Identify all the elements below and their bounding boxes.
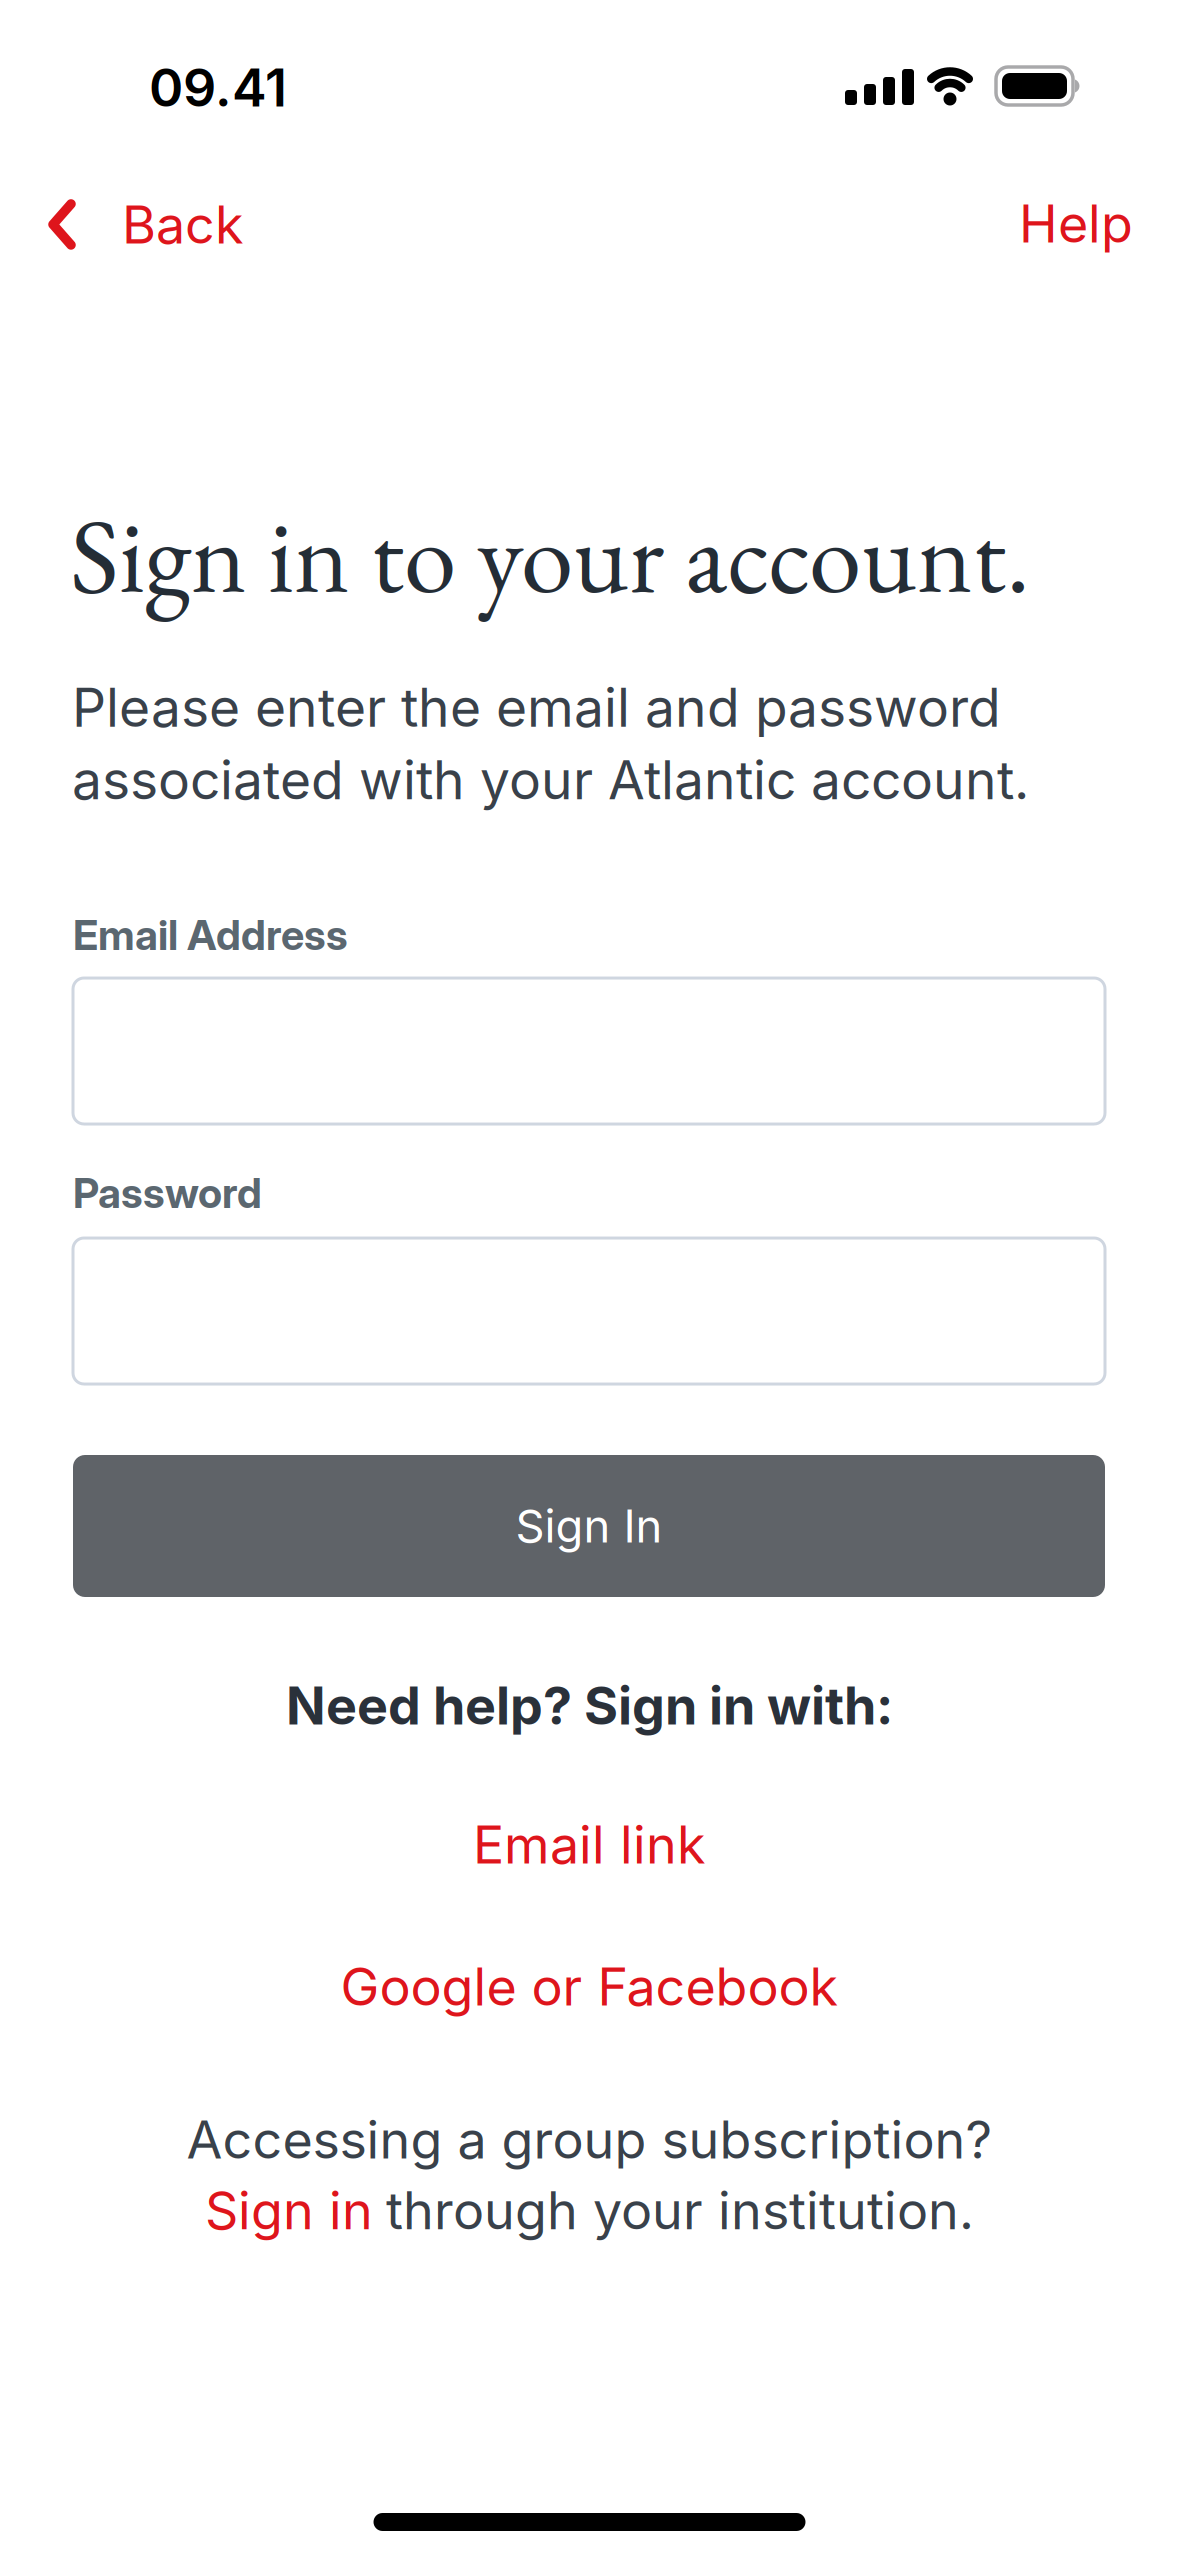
staticText: 09.41 xyxy=(149,56,287,119)
button[interactable]: Google or Facebook xyxy=(340,1955,838,2018)
staticText: Please enter the email and password asso… xyxy=(72,675,1029,812)
staticText: Password xyxy=(73,1168,262,1218)
staticText: Help xyxy=(1019,192,1133,255)
staticText: through your institution. xyxy=(386,2179,974,2242)
staticText: Need help? Sign in with: xyxy=(286,1674,893,1737)
button[interactable]: Email link xyxy=(473,1813,706,1876)
staticText: Email link xyxy=(473,1813,706,1876)
button[interactable]: Sign in xyxy=(205,2179,974,2242)
button[interactable]: Sign In xyxy=(0,0,1105,1597)
button[interactable]: Help xyxy=(0,0,1133,255)
staticText: Email Address xyxy=(73,910,348,960)
button[interactable]: Back xyxy=(0,0,244,256)
staticText: Back xyxy=(122,193,244,256)
staticText: Google or Facebook xyxy=(340,1955,838,2018)
staticText: Sign in xyxy=(205,2179,373,2242)
staticText: Sign in to your account. xyxy=(70,486,1030,623)
staticText: Sign In xyxy=(515,1499,662,1553)
staticText: Accessing a group subscription? xyxy=(186,2108,992,2171)
